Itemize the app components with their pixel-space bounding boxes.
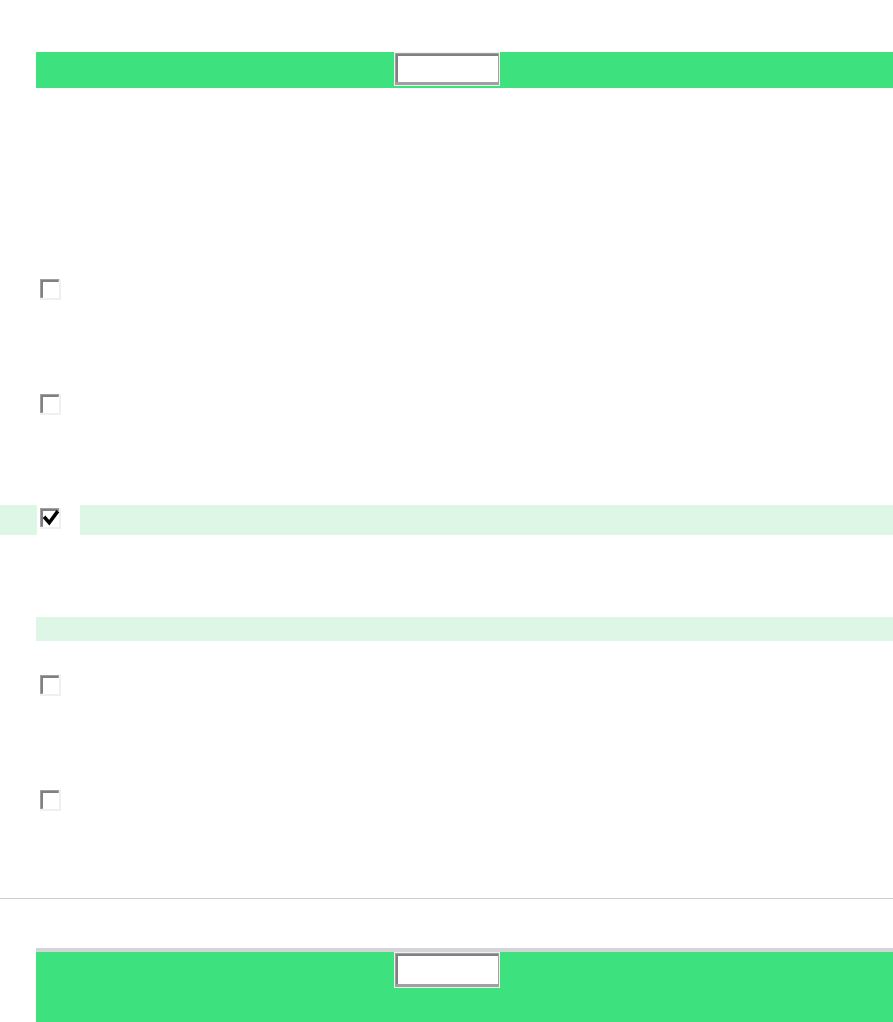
button[interactable]: Top toolbar [36, 52, 893, 88]
button[interactable]: Option 3 checkbox, checked [40, 508, 61, 529]
button[interactable]: Option 2 checkbox [40, 394, 61, 415]
button[interactable]: Option 5 checkbox [40, 790, 61, 811]
button[interactable]: Option 4 checkbox [40, 675, 61, 696]
button[interactable]: Bottom toolbar [36, 952, 893, 1022]
button[interactable]: Bottom text field [394, 952, 500, 988]
button[interactable]: Text field [394, 52, 500, 86]
button[interactable]: Option 1 checkbox [40, 279, 61, 300]
